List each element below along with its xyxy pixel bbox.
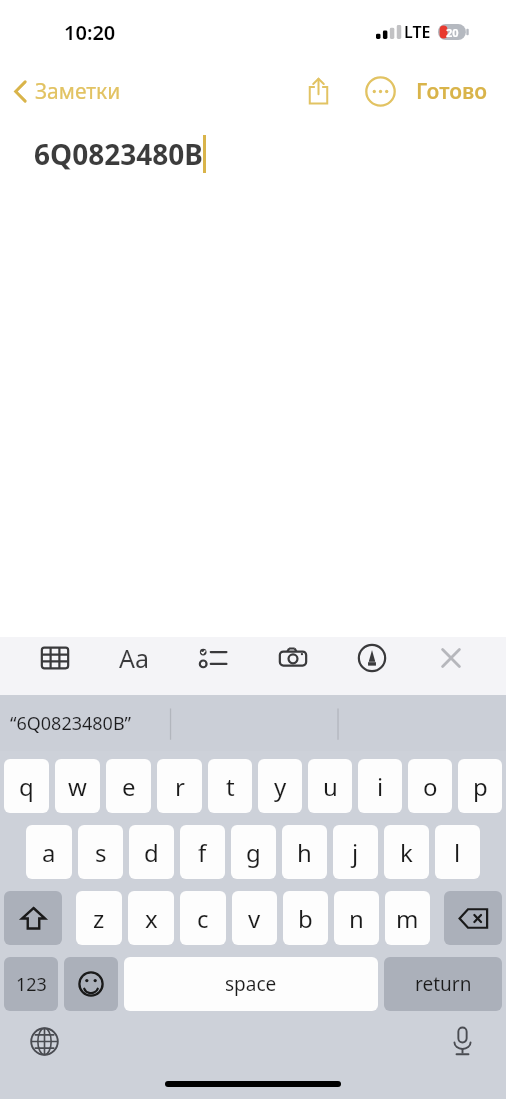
staticText: Aa — [119, 641, 150, 675]
button[interactable]: c — [180, 891, 226, 945]
staticText: k — [400, 836, 413, 869]
button[interactable]: “6Q0823480B” — [10, 711, 132, 736]
staticText: d — [144, 836, 159, 869]
staticText: s — [95, 836, 107, 869]
button[interactable]: Dictate — [440, 1019, 484, 1063]
button[interactable]: return — [384, 957, 502, 1011]
staticText: y — [274, 770, 287, 803]
button[interactable]: m — [385, 891, 430, 945]
staticText: r — [175, 770, 185, 803]
staticText: return — [415, 971, 472, 997]
button[interactable]: p — [458, 759, 502, 813]
button[interactable]: x — [128, 891, 174, 945]
button[interactable]: h — [282, 825, 327, 879]
staticText: f — [198, 836, 207, 869]
button[interactable]: b — [283, 891, 328, 945]
button[interactable]: e — [106, 759, 151, 813]
button[interactable]: s — [78, 825, 123, 879]
button[interactable]: 123 — [4, 957, 58, 1011]
button[interactable]: n — [334, 891, 379, 945]
staticText: h — [297, 836, 312, 869]
button[interactable]: Table — [34, 637, 76, 679]
staticText: b — [298, 902, 313, 935]
button[interactable]: Shift — [4, 891, 62, 945]
staticText: m — [396, 902, 419, 935]
staticText: LTE — [404, 21, 431, 43]
button[interactable]: t — [208, 759, 252, 813]
button[interactable]: Emoji — [64, 957, 118, 1011]
staticText: 20 — [446, 25, 459, 40]
button[interactable]: w — [55, 759, 100, 813]
button[interactable]: g — [231, 825, 276, 879]
staticText: u — [323, 770, 338, 803]
button[interactable]: k — [384, 825, 429, 879]
staticText: g — [246, 836, 261, 869]
staticText: 123 — [16, 972, 47, 997]
button[interactable]: r — [157, 759, 202, 813]
button[interactable]: l — [435, 825, 480, 879]
button[interactable]: z — [76, 891, 122, 945]
button[interactable]: j — [333, 825, 378, 879]
staticText: Готово — [416, 77, 488, 106]
staticText: l — [454, 836, 461, 869]
staticText: i — [377, 770, 384, 803]
staticText: o — [423, 770, 438, 803]
staticText: v — [248, 902, 261, 935]
staticText: 6Q0823480B — [34, 135, 203, 173]
button[interactable]: Close keyboard — [430, 637, 472, 679]
staticText: j — [352, 836, 359, 869]
button[interactable]: u — [308, 759, 352, 813]
staticText: z — [93, 902, 105, 935]
button[interactable]: q — [4, 759, 49, 813]
staticText: t — [226, 770, 235, 803]
button[interactable]: Aa — [113, 637, 155, 679]
button[interactable]: Заметки — [8, 72, 127, 111]
staticText: a — [42, 836, 56, 869]
staticText: Заметки — [35, 77, 121, 106]
staticText: n — [349, 902, 364, 935]
button[interactable]: Backspace — [444, 891, 502, 945]
button[interactable]: a — [26, 825, 72, 879]
button[interactable]: Change keyboard language — [22, 1019, 66, 1063]
button[interactable]: v — [232, 891, 277, 945]
button[interactable]: More options — [358, 69, 402, 113]
button[interactable]: space — [124, 957, 378, 1011]
button[interactable]: Share — [296, 69, 340, 113]
button[interactable]: Camera — [272, 637, 314, 679]
button[interactable]: d — [129, 825, 174, 879]
staticText: w — [68, 770, 87, 803]
staticText: p — [473, 770, 488, 803]
button[interactable]: y — [258, 759, 302, 813]
staticText: x — [145, 902, 158, 935]
staticText: e — [122, 770, 136, 803]
staticText: q — [19, 770, 34, 803]
button[interactable]: o — [408, 759, 452, 813]
button[interactable]: Checklist — [192, 637, 234, 679]
staticText: 10:20 — [64, 19, 116, 46]
staticText: c — [197, 902, 209, 935]
button[interactable]: Markup — [351, 637, 393, 679]
button[interactable]: i — [358, 759, 402, 813]
button[interactable]: f — [180, 825, 225, 879]
staticText: space — [225, 971, 277, 997]
button[interactable]: Готово — [410, 70, 494, 113]
